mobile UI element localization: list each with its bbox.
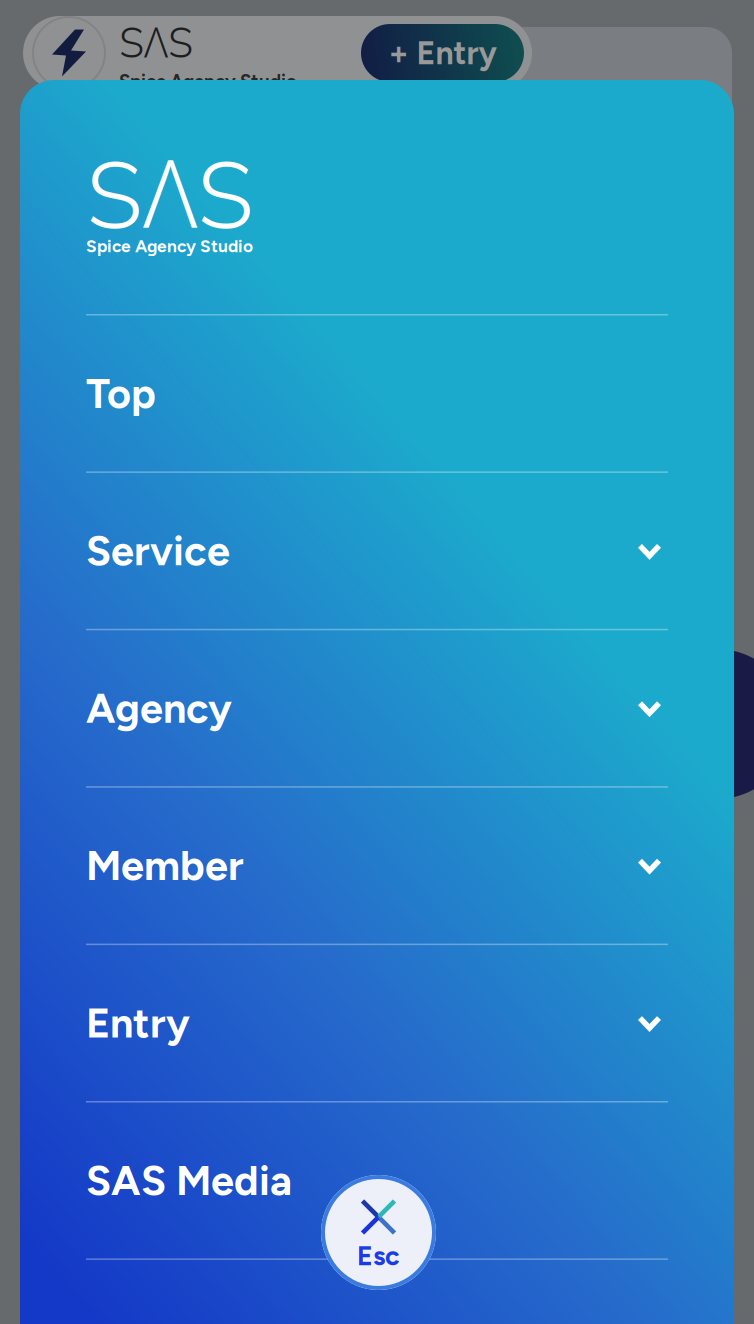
staticText: Top [86, 369, 156, 418]
staticText: SΛS [119, 13, 193, 72]
button[interactable]: Close menu [317, 1171, 439, 1293]
staticText: Spice Agency Studio [119, 70, 297, 93]
button[interactable]: Top [86, 315, 668, 471]
staticText: Agency [86, 683, 232, 733]
staticText: Service [86, 526, 230, 576]
button[interactable]: SAS Media [86, 1102, 668, 1258]
staticText: Spice Agency Studio [86, 236, 253, 256]
staticText: Member [86, 841, 244, 890]
button[interactable]: Member [86, 788, 668, 944]
staticText: Esc [357, 1240, 400, 1272]
button[interactable]: Agency [86, 630, 668, 786]
staticText: + Entry [388, 34, 496, 72]
button[interactable]: Entry [86, 945, 668, 1101]
button[interactable]: Service [86, 473, 668, 629]
staticText: SΛS [86, 128, 254, 261]
staticText: SAS Media [86, 1156, 292, 1205]
staticText: Entry [86, 998, 190, 1048]
